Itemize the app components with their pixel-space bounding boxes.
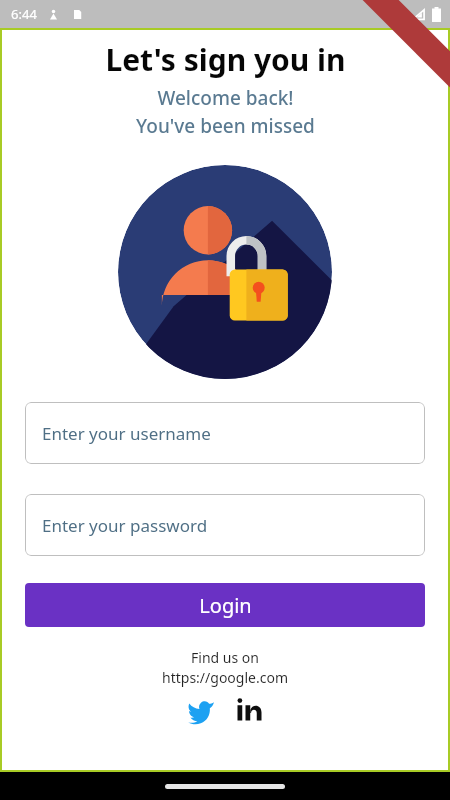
staticText: You've been missed	[136, 113, 315, 139]
button[interactable]: Twitter	[186, 694, 216, 724]
staticText: Let's sign you in	[105, 39, 346, 80]
staticText: Find us on	[191, 648, 259, 667]
staticText: https://google.com	[162, 668, 288, 687]
staticText: Welcome back!	[157, 85, 294, 111]
button[interactable]: Enter your password	[25, 494, 425, 556]
button[interactable]: Login	[25, 583, 425, 627]
staticText: Enter your password	[42, 514, 208, 537]
staticText: DEBUG	[395, 39, 436, 80]
staticText: Enter your username	[42, 422, 211, 445]
staticText: Login	[199, 592, 252, 619]
button[interactable]: LinkedIn	[234, 694, 264, 724]
staticText: 6:44	[11, 5, 37, 23]
button[interactable]: Enter your username	[25, 402, 425, 464]
